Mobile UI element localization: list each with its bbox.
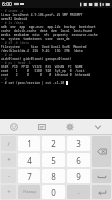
staticText: ~ # cat /proc/version | cut -c1-20 [1,81,66,85]
staticText: ~ # id [1,53,111,57]
staticText: armv8l Android [1,17,111,21]
button[interactable]: Назад [18,185,40,199]
staticText: ~ # df -h /data [1,41,111,45]
staticText: root 2 0 0 0 kthread 0 kthreadd [1,73,111,77]
button[interactable]: 4 [18,153,40,167]
staticText: 2 [51,138,56,149]
staticText: - [8,172,10,180]
staticText: /dev/block/dm-4 25G 9.4G 15G 39% /data [1,49,111,53]
button[interactable]: Emoji [0,119,28,134]
staticText: cache dalvik-cache data drm local lost+f… [1,29,111,33]
staticText: USER PID PPID VSIZE RSS WCHAN PC NAME [1,65,111,69]
button[interactable]: 1 [18,136,40,151]
button[interactable]: 6 [67,153,90,167]
staticText: ss system tombstones user user_de [1,37,111,41]
staticText: 8 [51,171,56,182]
staticText: 3 [76,138,81,149]
button[interactable]: Space [92,169,111,183]
button[interactable]: 9 [67,169,90,183]
staticText: media mediadrm misc nfc property resourc… [1,33,111,37]
staticText: 4 [27,155,32,166]
staticText: ~ # ls /data [1,21,111,25]
button[interactable]: Backspace [92,136,111,167]
staticText: Filesystem Size Used Avail Use% Mounted [1,45,111,49]
staticText: adb anr app app-asec app-lib backup boot… [1,25,111,29]
staticText: 6:00 [2,1,12,8]
button[interactable]: / [1,136,16,151]
staticText: + [7,188,11,196]
staticText: 5 [51,155,56,166]
button[interactable]: Hide keyboard [84,119,112,134]
button[interactable]: Settings [56,119,84,134]
staticText: 7 [27,171,32,182]
staticText: root 1 0 5180 920 SyS_ep 0 /init [1,69,111,73]
button[interactable]: 7 [18,169,40,183]
staticText: uid=0(root) gid=0(root) groups=0(root) [1,57,111,61]
staticText: 0 [51,187,56,198]
staticText: Назад [23,189,36,195]
staticText: ~ # uname -a [1,9,111,13]
button[interactable]: + [1,185,16,199]
staticText: 9 [76,171,81,182]
button[interactable]: 0 [42,185,65,199]
button[interactable]: 2 [42,136,65,151]
button[interactable]: 3 [67,136,90,151]
button[interactable]: Clipboard [28,119,56,134]
staticText: ~ # [1,77,111,81]
button[interactable]: 5 [42,153,65,167]
staticText: ~ # ps | head -5 [1,61,111,65]
button[interactable]: * [1,153,16,167]
staticText: Linux localhost 4.9.186-perf+ #1 SMP PRE… [1,13,111,17]
staticText: / [7,140,10,148]
staticText: * [7,156,11,164]
staticText: . [78,187,80,197]
staticText: 1 [27,138,32,149]
staticText: 6 [76,155,81,166]
button[interactable]: 8 [42,169,65,183]
button[interactable]: Enter [92,185,111,199]
